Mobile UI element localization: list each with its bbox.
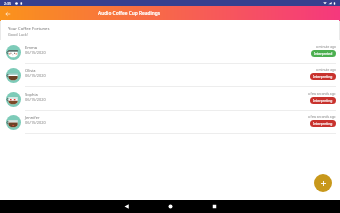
button[interactable]: Back <box>120 200 133 213</box>
staticText: Interpreted <box>314 51 333 56</box>
staticText: 06/15/2020 <box>25 73 46 78</box>
staticText: Olivia <box>25 68 36 73</box>
staticText: 06/15/2020 <box>25 120 46 125</box>
staticText: Interpreting <box>313 121 333 126</box>
staticText: a few seconds ago <box>308 115 336 119</box>
staticText: 2:35 <box>4 1 11 6</box>
button[interactable]: Sophia <box>0 87 340 111</box>
staticText: a minute ago <box>316 68 336 72</box>
staticText: Audio Coffee Cup Readings <box>98 10 161 17</box>
staticText: Interpreting <box>313 74 333 79</box>
staticText: Your Coffee Fortunes <box>8 26 50 32</box>
staticText: Jennifer <box>25 115 40 120</box>
staticText: 06/15/2020 <box>25 50 46 55</box>
staticText: a minute ago <box>316 45 336 49</box>
staticText: Good Luck! <box>8 32 28 37</box>
staticText: Interpreting <box>313 98 333 103</box>
button[interactable]: Emma <box>0 40 340 64</box>
button[interactable]: Add <box>314 174 332 192</box>
staticText: Sophia <box>25 92 38 97</box>
button[interactable]: Jennifer <box>0 110 340 134</box>
button[interactable]: Recents <box>208 200 221 213</box>
staticText: Emma <box>25 45 37 50</box>
button[interactable]: Back <box>2 8 13 19</box>
button[interactable]: Olivia <box>0 63 340 87</box>
staticText: 06/15/2020 <box>25 97 46 102</box>
button[interactable]: Home <box>164 200 177 213</box>
staticText: a few seconds ago <box>308 92 336 96</box>
